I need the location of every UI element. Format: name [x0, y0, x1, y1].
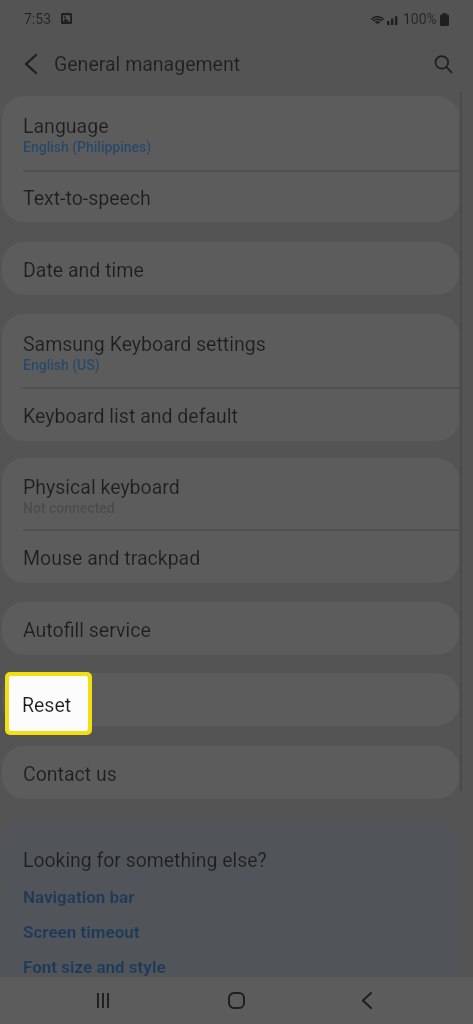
staticText: Looking for something else?	[23, 849, 267, 872]
button[interactable]: Autofill service	[2, 602, 459, 655]
button[interactable]: Home	[212, 977, 260, 1024]
staticText: Keyboard list and default	[23, 405, 238, 428]
staticText: General management	[54, 53, 241, 76]
button[interactable]: Navigation bar	[23, 887, 135, 907]
button[interactable]: Font size and style	[23, 957, 166, 977]
button[interactable]: Recent apps	[79, 977, 127, 1024]
staticText: Date and time	[23, 259, 144, 282]
button[interactable]: Screen timeout	[23, 922, 140, 942]
staticText: Samsung Keyboard settings	[23, 333, 266, 356]
staticText: English (US)	[23, 357, 100, 373]
button[interactable]: Text-to-speech	[2, 170, 459, 222]
button[interactable]: Reset	[2, 673, 459, 726]
button[interactable]: Navigate up	[9, 42, 53, 86]
staticText: English (Philippines)	[23, 139, 152, 155]
button[interactable]: Physical keyboard	[2, 458, 459, 529]
staticText: Physical keyboard	[23, 476, 180, 499]
staticText: Reset	[22, 694, 72, 717]
button[interactable]: Back	[343, 977, 391, 1024]
staticText: Contact us	[23, 763, 117, 786]
staticText: Autofill service	[23, 619, 151, 642]
staticText: 100%	[403, 11, 437, 27]
staticText: Text-to-speech	[23, 187, 151, 210]
staticText: Language	[23, 115, 109, 138]
staticText: Not connected	[23, 500, 115, 516]
button[interactable]: Mouse and trackpad	[2, 529, 459, 583]
button[interactable]: Search	[421, 42, 465, 86]
staticText: 7:53	[24, 11, 51, 27]
button[interactable]: Reset	[9, 676, 88, 731]
button[interactable]: Contact us	[2, 746, 459, 799]
button[interactable]: Date and time	[2, 242, 459, 295]
staticText: Mouse and trackpad	[23, 547, 201, 570]
button[interactable]: Language	[2, 96, 459, 170]
staticText: Reset	[23, 690, 73, 713]
button[interactable]: Keyboard list and default	[2, 387, 459, 441]
button[interactable]: Samsung Keyboard settings	[2, 314, 459, 387]
